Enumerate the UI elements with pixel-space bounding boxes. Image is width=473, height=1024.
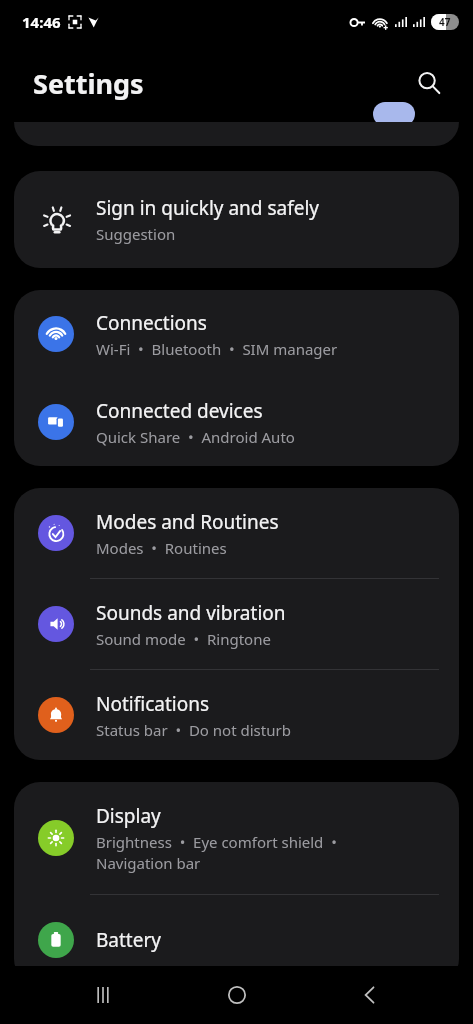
button[interactable]: Battery (14, 895, 459, 985)
button[interactable]: Connected devices (14, 378, 459, 466)
staticText: Display (96, 803, 161, 829)
staticText: 14:46 (22, 12, 61, 32)
button[interactable]: Connections (14, 290, 459, 378)
button[interactable]: Search (408, 62, 450, 104)
staticText: Wi-Fi • Bluetooth • SIM manager (96, 339, 338, 359)
button[interactable]: Recents (72, 966, 134, 1024)
staticText: 47 (439, 15, 451, 29)
staticText: Sound mode • Ringtone (96, 629, 271, 649)
staticText: Modes and Routines (96, 509, 279, 535)
staticText: Sounds and vibration (96, 600, 286, 626)
staticText: Battery (96, 927, 161, 953)
staticText: Settings (33, 65, 144, 102)
button[interactable]: Sounds and vibration (14, 579, 459, 669)
staticText: Status bar • Do not disturb (96, 720, 291, 740)
staticText: Connected devices (96, 398, 263, 424)
button[interactable]: Home (206, 966, 268, 1024)
button[interactable]: Display (14, 782, 459, 894)
staticText: Modes • Routines (96, 538, 227, 558)
staticText: Sign in quickly and safely (96, 195, 320, 221)
button[interactable]: Back (339, 966, 401, 1024)
staticText: Brightness • Eye comfort shield • Naviga… (96, 832, 337, 874)
button[interactable] (14, 122, 459, 146)
button[interactable]: Sign in quickly and safely (14, 171, 459, 268)
staticText: Connections (96, 310, 207, 336)
button[interactable]: Modes and Routines (14, 488, 459, 578)
staticText: Suggestion (96, 224, 176, 244)
staticText: Quick Share • Android Auto (96, 427, 295, 447)
button[interactable]: Notifications (14, 670, 459, 760)
staticText: Notifications (96, 691, 210, 717)
